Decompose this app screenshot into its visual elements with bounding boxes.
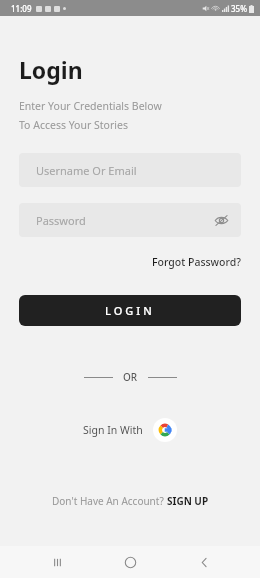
button[interactable]: Password xyxy=(19,203,241,237)
button[interactable]: Home xyxy=(113,546,147,578)
staticText: 35% xyxy=(231,3,247,14)
button[interactable]: Username Or Email xyxy=(19,153,241,187)
staticText: SIGN UP xyxy=(167,494,209,508)
staticText: Sign In With xyxy=(83,423,143,437)
button[interactable]: Show password xyxy=(212,211,230,229)
button[interactable]: LOGIN xyxy=(19,295,241,326)
staticText: 11:09 xyxy=(11,3,32,14)
staticText: LOGIN xyxy=(105,303,155,318)
button[interactable]: Sign In With xyxy=(0,418,260,442)
button[interactable]: Back xyxy=(187,546,221,578)
staticText: Enter Your Credentials Below xyxy=(19,99,162,113)
other: Sign in with Google xyxy=(153,418,177,442)
button[interactable]: Don't Have An Account? xyxy=(0,490,260,512)
button[interactable]: Recent apps xyxy=(40,546,74,578)
staticText: Password xyxy=(36,213,86,228)
staticText: Forgot Password? xyxy=(152,255,241,269)
staticText: Username Or Email xyxy=(36,163,137,178)
staticText: To Access Your Stories xyxy=(19,118,128,132)
button[interactable]: Forgot Password? xyxy=(133,251,260,273)
staticText: Don't Have An Account? xyxy=(52,494,167,508)
staticText: OR xyxy=(123,370,138,384)
staticText: Login xyxy=(19,54,83,85)
